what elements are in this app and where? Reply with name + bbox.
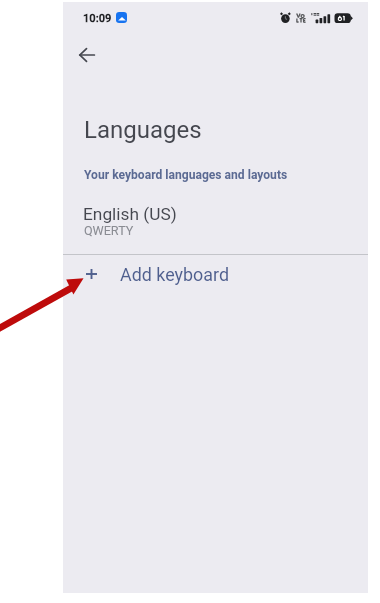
- button[interactable]: Back: [65, 33, 109, 77]
- staticText: QWERTY: [84, 223, 134, 238]
- staticText: Add keyboard: [120, 264, 229, 285]
- staticText: Your keyboard languages and layouts: [84, 168, 288, 182]
- staticText: 10:09: [83, 12, 112, 25]
- button[interactable]: Add keyboard: [63, 256, 368, 292]
- staticText: Languages: [84, 116, 202, 144]
- staticText: English (US): [83, 204, 177, 224]
- button[interactable]: English (US): [63, 195, 368, 251]
